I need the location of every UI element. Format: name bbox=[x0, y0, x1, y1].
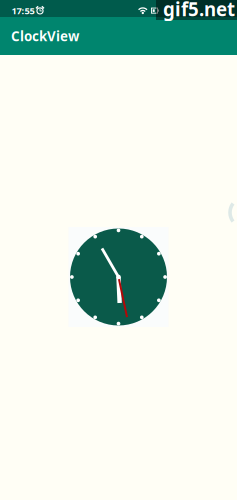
staticText: gif5.net bbox=[163, 0, 235, 21]
staticText: ClockView bbox=[11, 27, 79, 45]
staticText: 17:55 bbox=[11, 4, 34, 17]
